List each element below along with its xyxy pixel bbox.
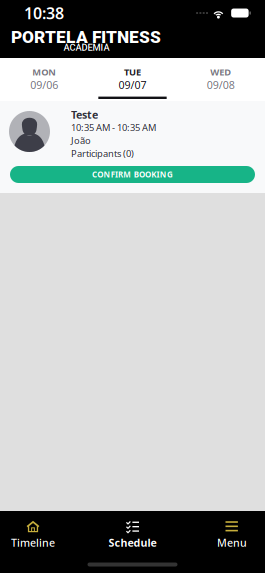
button[interactable]: Schedule <box>99 510 165 554</box>
button[interactable]: MON <box>0 58 88 101</box>
staticText: TUE <box>124 66 141 78</box>
staticText: 09/08 <box>207 78 235 92</box>
staticText: 10:38 <box>24 2 64 24</box>
staticText: PORTELA FITNESS <box>11 27 161 47</box>
staticText: WED <box>210 66 231 78</box>
button[interactable]: TUE <box>88 58 177 101</box>
staticText: Timeline <box>11 535 55 550</box>
staticText: Menu <box>217 535 247 550</box>
button[interactable]: WED <box>177 58 265 101</box>
staticText: 09/06 <box>30 78 58 92</box>
staticText: Teste <box>71 107 98 122</box>
staticText: MON <box>32 66 56 78</box>
staticText: CONFIRM BOOKING <box>92 169 173 180</box>
staticText: João <box>71 134 91 147</box>
button[interactable]: Timeline <box>0 510 66 554</box>
staticText: Participants (0) <box>71 147 134 160</box>
button[interactable]: CONFIRM BOOKING <box>10 166 255 183</box>
staticText: ACADEMIA <box>63 42 109 53</box>
button[interactable]: Menu <box>199 510 265 554</box>
staticText: 10:35 AM - 10:35 AM <box>71 121 156 134</box>
staticText: 09/07 <box>118 78 146 92</box>
staticText: Schedule <box>108 535 156 550</box>
